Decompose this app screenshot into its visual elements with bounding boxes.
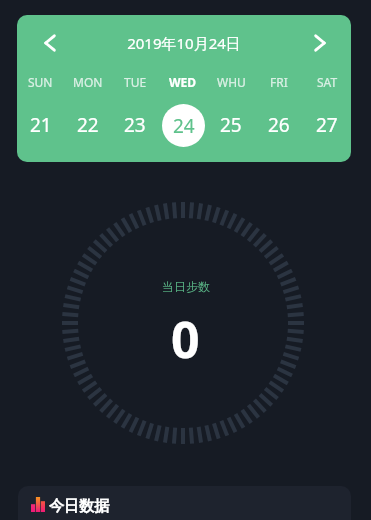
staticText: 27 (316, 112, 338, 138)
staticText: 0 (171, 305, 200, 373)
staticText: 今日数据 (49, 497, 109, 516)
button[interactable]: 26 (255, 93, 303, 157)
button[interactable]: 23 (111, 93, 159, 157)
staticText: 25 (220, 112, 242, 138)
staticText: 21 (30, 112, 52, 138)
button[interactable]: 22 (64, 93, 111, 157)
staticText: SUN (28, 74, 53, 90)
staticText: 2019年10月24日 (127, 33, 241, 53)
staticText: WHU (217, 74, 246, 90)
staticText: 22 (77, 112, 99, 138)
staticText: 24 (173, 113, 195, 139)
button[interactable]: 今日数据 (18, 486, 351, 520)
staticText: FRI (270, 74, 288, 90)
staticText: 当日步数 (162, 279, 210, 294)
button[interactable]: 27 (303, 93, 351, 157)
staticText: 26 (268, 112, 290, 138)
staticText: TUE (124, 74, 147, 90)
staticText: WED (169, 74, 197, 90)
staticText: MON (73, 74, 103, 90)
staticText: 23 (124, 112, 146, 138)
staticText: SAT (317, 74, 338, 90)
button[interactable]: Previous day (32, 25, 68, 61)
button[interactable]: 25 (207, 93, 255, 157)
button[interactable]: 21 (17, 93, 64, 157)
button[interactable]: Next day (302, 25, 338, 61)
button[interactable]: 24 (159, 93, 207, 157)
